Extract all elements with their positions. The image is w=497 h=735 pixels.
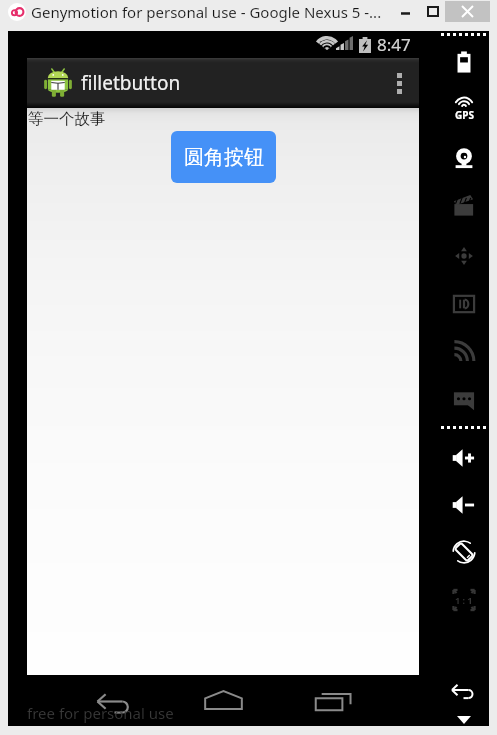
staticText: 1 : 1 <box>455 594 473 606</box>
button[interactable]: Camera <box>441 142 486 174</box>
button[interactable]: Close <box>445 1 490 22</box>
button[interactable]: 圆角按钮 <box>171 131 276 183</box>
button[interactable]: Volume up <box>441 442 486 474</box>
button[interactable]: Maximize <box>417 1 448 22</box>
button[interactable]: Messages <box>441 384 486 416</box>
button[interactable]: Home <box>183 678 263 722</box>
staticText: Genymotion for personal use - Google Nex… <box>31 2 382 22</box>
button[interactable]: Rotate <box>441 536 486 568</box>
button[interactable]: Recents <box>293 679 373 723</box>
staticText: filletbutton <box>81 70 181 96</box>
button[interactable]: Back <box>74 679 154 723</box>
staticText: GPS <box>455 108 474 122</box>
button[interactable]: Back <box>441 674 486 706</box>
button[interactable]: Volume down <box>441 489 486 521</box>
staticText: 圆角按钮 <box>184 145 264 170</box>
staticText: 等一个故事 <box>28 109 106 129</box>
staticText: free for personal use <box>27 703 174 723</box>
button[interactable]: Battery <box>441 46 486 78</box>
button[interactable]: More options <box>379 58 419 108</box>
button[interactable]: Identifiers <box>441 288 486 320</box>
button[interactable]: Minimize <box>390 1 421 22</box>
staticText: 8:47 <box>377 33 411 56</box>
button[interactable]: Collapse <box>441 710 486 730</box>
button[interactable]: Video recording <box>441 190 486 222</box>
button[interactable]: Network <box>441 336 486 368</box>
button[interactable]: Zoom 1:1 <box>441 584 486 616</box>
button[interactable]: GPS <box>441 93 486 125</box>
button[interactable]: Virtual sensors <box>441 240 486 272</box>
